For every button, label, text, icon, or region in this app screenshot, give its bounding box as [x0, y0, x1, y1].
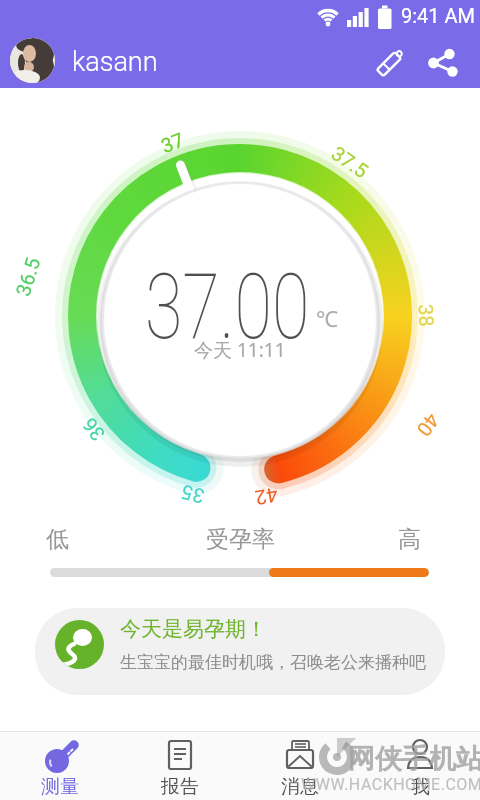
button[interactable]: 今天是易孕期！ [35, 608, 445, 692]
staticText: 37.00 [145, 255, 310, 351]
staticText: 36.5 [11, 255, 44, 299]
staticText: 我 [411, 775, 430, 799]
button[interactable] [372, 45, 408, 81]
staticText: 35 [179, 480, 207, 508]
button[interactable] [428, 46, 462, 80]
staticText: 37 [158, 127, 187, 157]
staticText: 高 [398, 525, 421, 553]
staticText: 42 [253, 483, 280, 510]
staticText: 37.5 [328, 141, 373, 182]
staticText: 38 [414, 303, 439, 328]
staticText: 今天是易孕期！ [120, 616, 267, 642]
staticText: 低 [46, 525, 69, 553]
staticText: 消息 [281, 775, 319, 799]
button[interactable]: 测量 [0, 731, 120, 800]
button[interactable]: 报告 [120, 731, 240, 800]
staticText: ℃ [316, 303, 338, 333]
button[interactable] [10, 38, 55, 83]
staticText: 测量 [41, 775, 79, 799]
staticText: 受孕率 [206, 525, 275, 553]
staticText: WWW.HACKHOME.COM [301, 775, 480, 794]
staticText: 网侠手机站 [348, 742, 480, 776]
button[interactable]: 消息 [240, 731, 360, 800]
staticText: 今天 11:11 [194, 337, 286, 363]
staticText: 报告 [161, 775, 199, 799]
staticText: 40 [412, 409, 444, 441]
staticText: 36 [77, 413, 109, 445]
staticText: 生宝宝的最佳时机哦，召唤老公来播种吧 [120, 652, 426, 673]
staticText: kasann [72, 46, 158, 78]
staticText: 9:41 AM [401, 4, 476, 27]
button[interactable]: 我 [360, 731, 480, 800]
